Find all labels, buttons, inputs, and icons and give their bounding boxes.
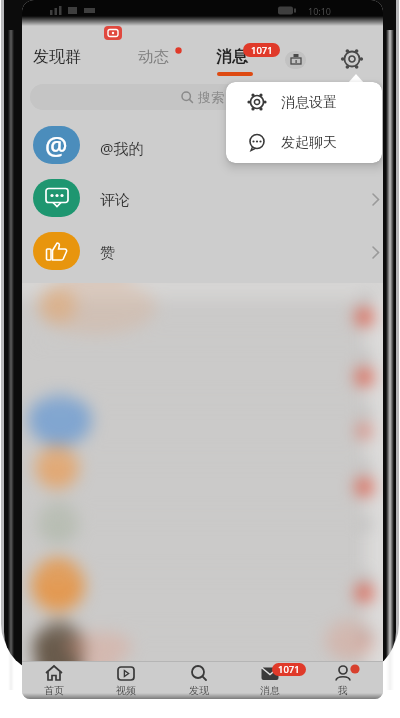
button[interactable]: 发现 — [169, 661, 229, 699]
button[interactable]: 发起聊天 — [226, 122, 382, 163]
button[interactable]: 消息 — [216, 47, 248, 67]
button[interactable]: 消息 — [240, 661, 300, 699]
staticText: 搜索 — [198, 89, 224, 105]
button[interactable]: 我 — [313, 661, 373, 699]
button[interactable]: 动态 — [138, 47, 169, 67]
button[interactable]: 赞 — [22, 226, 383, 279]
button[interactable]: 消息设置 — [226, 82, 382, 122]
staticText: 10:10 — [308, 5, 332, 17]
staticText: 消息 — [260, 684, 280, 697]
staticText: @ — [45, 128, 68, 162]
button[interactable]: 评论 — [22, 173, 383, 226]
staticText: 赞 — [100, 244, 115, 263]
button[interactable]: @ — [22, 120, 383, 173]
staticText: 发起聊天 — [281, 134, 337, 152]
button[interactable]: 发现群 — [33, 47, 81, 67]
staticText: 发现 — [189, 684, 209, 697]
staticText: 视频 — [116, 684, 136, 697]
staticText: 评论 — [100, 191, 130, 210]
staticText: 1071 — [278, 663, 300, 676]
staticText: 消息 — [216, 47, 248, 67]
staticText: 1071 — [251, 44, 273, 57]
staticText: @我的 — [100, 138, 144, 158]
button[interactable] — [340, 47, 364, 71]
button[interactable]: 搜索 — [30, 84, 374, 110]
staticText: 消息设置 — [281, 94, 337, 112]
staticText: 动态 — [138, 47, 169, 67]
staticText: 发现群 — [33, 47, 81, 67]
button[interactable] — [285, 51, 306, 69]
button[interactable]: 视频 — [96, 661, 156, 699]
button[interactable]: 首页 — [24, 661, 84, 699]
staticText: 我 — [338, 684, 348, 697]
staticText: 首页 — [44, 684, 64, 697]
